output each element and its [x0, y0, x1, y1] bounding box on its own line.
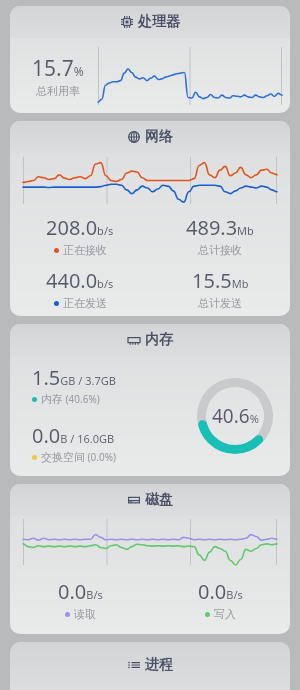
- staticText: 15.7%: [32, 54, 84, 83]
- staticText: 15.5Mb: [192, 267, 249, 294]
- staticText: 进程: [145, 656, 173, 674]
- staticText: 489.3Mb: [186, 214, 254, 241]
- staticText: 0.0B/s: [198, 578, 243, 605]
- staticText: 写入: [214, 607, 236, 621]
- button[interactable]: 处理器: [10, 6, 290, 113]
- staticText: 网络: [145, 128, 173, 146]
- staticText: 磁盘: [145, 491, 173, 509]
- button[interactable]: 磁盘: [10, 484, 290, 634]
- staticText: 正在接收: [63, 243, 107, 257]
- staticText: 内存 (40.6%): [41, 392, 100, 406]
- staticText: 40.6%: [212, 403, 259, 429]
- button[interactable]: 进程: [10, 642, 290, 690]
- button[interactable]: 网络: [10, 121, 290, 316]
- staticText: 0.0B/s: [58, 578, 103, 605]
- staticText: 读取: [74, 607, 96, 621]
- staticText: 总利用率: [36, 84, 80, 98]
- staticText: 处理器: [138, 13, 180, 31]
- staticText: 交换空间 (0.0%): [41, 450, 117, 464]
- staticText: 正在发送: [63, 296, 107, 310]
- staticText: 208.0b/s: [46, 214, 114, 241]
- staticText: 0.0B / 16.0GB: [32, 422, 115, 449]
- staticText: 440.0b/s: [46, 267, 114, 294]
- staticText: 1.5GB / 3.7GB: [32, 364, 116, 391]
- staticText: 总计发送: [198, 296, 242, 310]
- button[interactable]: 内存: [10, 324, 290, 476]
- staticText: 总计接收: [198, 243, 242, 257]
- staticText: 内存: [145, 331, 173, 349]
